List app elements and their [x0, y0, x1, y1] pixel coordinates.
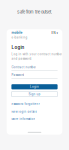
button[interactable]: New login details	[11, 110, 58, 113]
staticText: mobile	[11, 31, 22, 34]
staticText: Contract number	[11, 65, 36, 69]
staticText: and password.	[11, 57, 32, 60]
button[interactable]: Login	[11, 84, 58, 89]
staticText: More information	[11, 117, 35, 121]
staticText: Sign up	[28, 92, 40, 96]
button[interactable]: Sign up	[11, 91, 58, 97]
staticText: Password forgotten?	[11, 102, 39, 106]
staticText: Password	[11, 73, 24, 77]
staticText: Login	[30, 85, 39, 88]
staticText: e-banking	[11, 36, 27, 39]
button[interactable]: Password forgotten?	[11, 102, 58, 106]
staticText: Login	[11, 45, 24, 50]
staticText: Log in with your contract number	[11, 53, 62, 56]
button[interactable]: More information	[11, 117, 58, 121]
button[interactable]: EN ▾	[48, 31, 58, 35]
staticText: Safe from the outset.	[17, 10, 52, 14]
staticText: New login details	[11, 110, 36, 113]
staticText: EN ▾	[52, 31, 58, 35]
